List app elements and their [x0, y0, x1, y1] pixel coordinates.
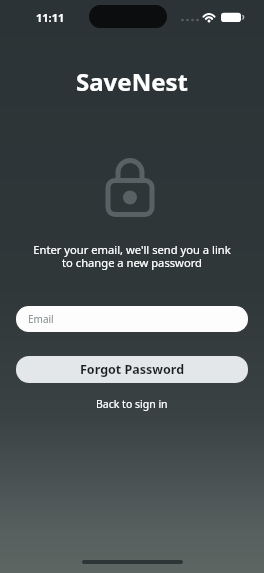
staticText: to change a new password	[62, 255, 202, 270]
staticText: SaveNest	[76, 65, 188, 98]
button[interactable]: Email	[16, 306, 248, 332]
staticText: Email	[28, 312, 54, 326]
staticText: Forgot Password	[80, 361, 185, 378]
button[interactable]: Back to sign in	[96, 397, 168, 411]
button[interactable]: Forgot Password	[16, 356, 248, 383]
staticText: Enter your email, we'll send you a link	[33, 242, 231, 257]
staticText: 11:11	[36, 10, 65, 25]
staticText: Back to sign in	[96, 397, 168, 411]
